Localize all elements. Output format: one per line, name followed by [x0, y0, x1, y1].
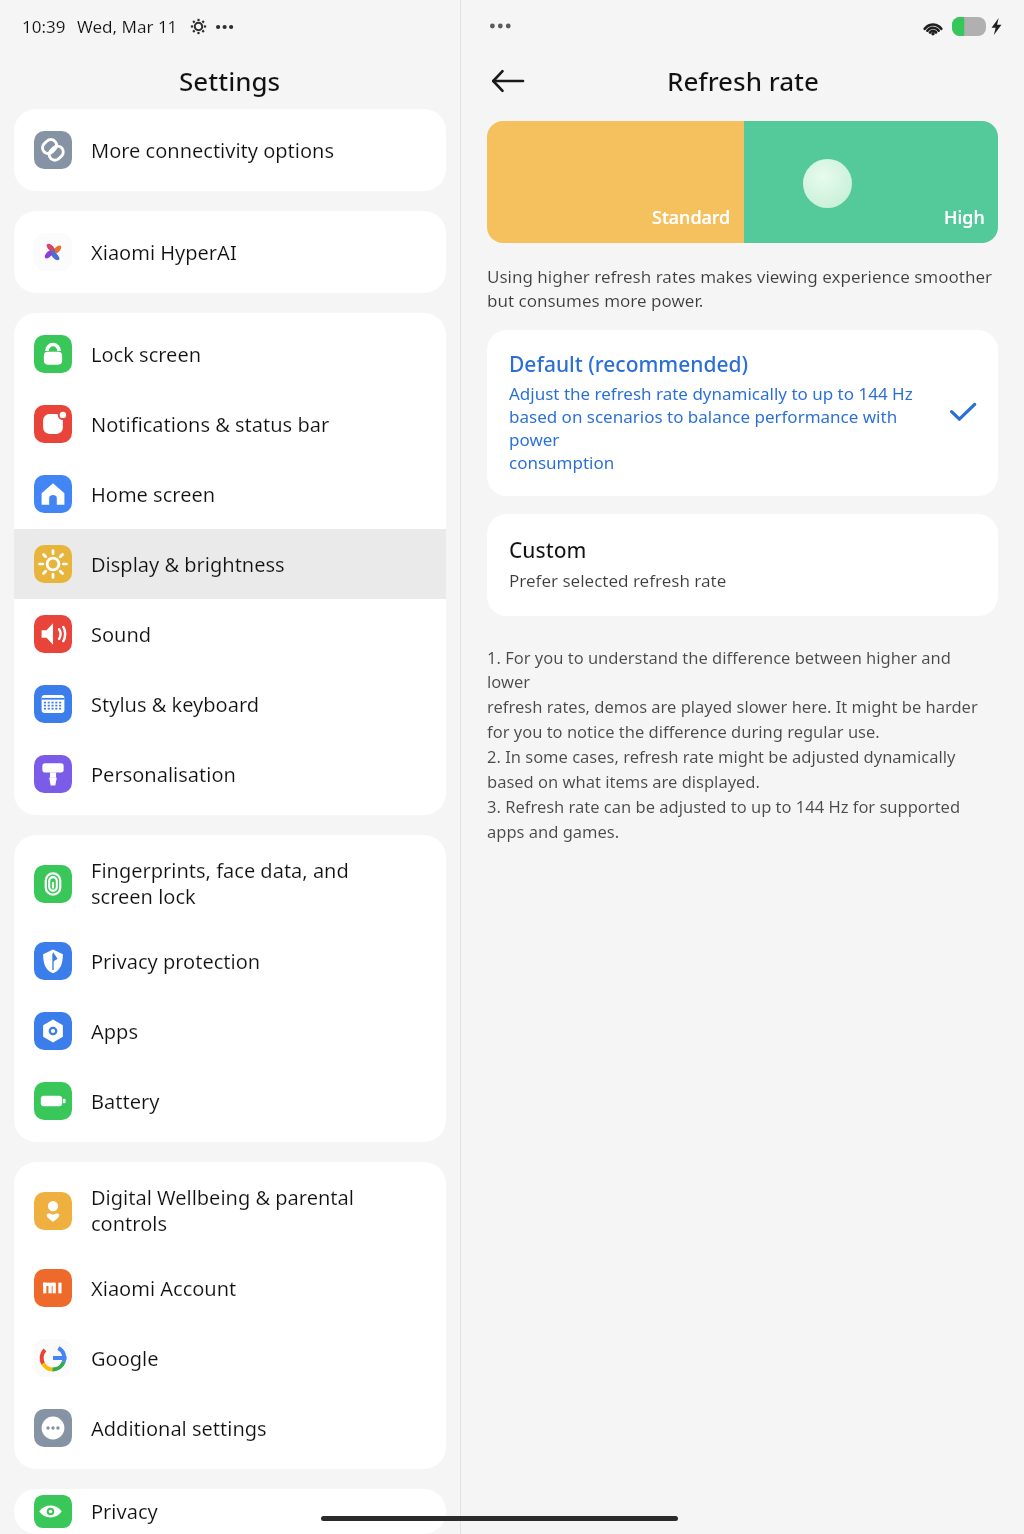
button[interactable]: High: [744, 121, 998, 243]
staticText: Using higher refresh rates makes viewing…: [487, 265, 993, 312]
staticText: Default (recommended): [509, 350, 749, 379]
staticText: Google: [91, 1345, 159, 1372]
staticText: 1. For you to understand the difference …: [487, 646, 998, 843]
staticText: Refresh rate: [667, 63, 819, 98]
staticText: Notifications & status bar: [91, 411, 330, 438]
button[interactable]: Custom: [487, 514, 998, 616]
button[interactable]: Display & brightness: [14, 529, 446, 599]
button[interactable]: Privacy protection: [14, 926, 446, 996]
staticText: Privacy: [91, 1498, 158, 1525]
staticText: High: [944, 205, 985, 230]
button[interactable]: Additional settings: [14, 1393, 446, 1463]
staticText: More connectivity options: [91, 137, 335, 164]
button[interactable]: Digital Wellbeing & parental controls: [14, 1168, 446, 1253]
staticText: Additional settings: [91, 1415, 267, 1442]
staticText: Digital Wellbeing & parental controls: [91, 1184, 354, 1237]
staticText: Prefer selected refresh rate: [509, 569, 727, 592]
button[interactable]: More connectivity options: [14, 115, 446, 185]
button[interactable]: Google: [14, 1323, 446, 1393]
button[interactable]: Notifications & status bar: [14, 389, 446, 459]
staticText: Settings: [179, 63, 281, 98]
staticText: Custom: [509, 536, 587, 565]
staticText: Display & brightness: [91, 551, 285, 578]
staticText: Stylus & keyboard: [91, 691, 260, 718]
staticText: Battery: [91, 1088, 160, 1115]
button[interactable]: Home screen: [14, 459, 446, 529]
staticText: Personalisation: [91, 761, 236, 788]
button[interactable]: Apps: [14, 996, 446, 1066]
button[interactable]: Default (recommended): [487, 330, 998, 496]
button[interactable]: Personalisation: [14, 739, 446, 809]
staticText: Privacy protection: [91, 948, 261, 975]
button[interactable]: Xiaomi Account: [14, 1253, 446, 1323]
button[interactable]: Fingerprints, face data, and screen lock: [14, 841, 446, 926]
staticText: Home screen: [91, 481, 216, 508]
staticText: Xiaomi Account: [91, 1275, 237, 1302]
button[interactable]: Stylus & keyboard: [14, 669, 446, 739]
staticText: Sound: [91, 621, 152, 648]
button[interactable]: Sound: [14, 599, 446, 669]
staticText: Fingerprints, face data, and screen lock: [91, 857, 349, 910]
button[interactable]: Lock screen: [14, 319, 446, 389]
button[interactable]: Battery: [14, 1066, 446, 1136]
staticText: Adjust the refresh rate dynamically to u…: [509, 382, 940, 474]
button[interactable]: Back: [483, 57, 531, 105]
staticText: 10:39: [22, 15, 66, 38]
staticText: Apps: [91, 1018, 138, 1045]
button[interactable]: Privacy: [14, 1495, 446, 1528]
staticText: Xiaomi HyperAI: [91, 239, 237, 266]
button[interactable]: Standard: [487, 121, 744, 243]
staticText: Wed, Mar 11: [77, 15, 178, 38]
button[interactable]: Xiaomi HyperAI: [14, 217, 446, 287]
staticText: Lock screen: [91, 341, 202, 368]
staticText: Standard: [652, 205, 731, 230]
